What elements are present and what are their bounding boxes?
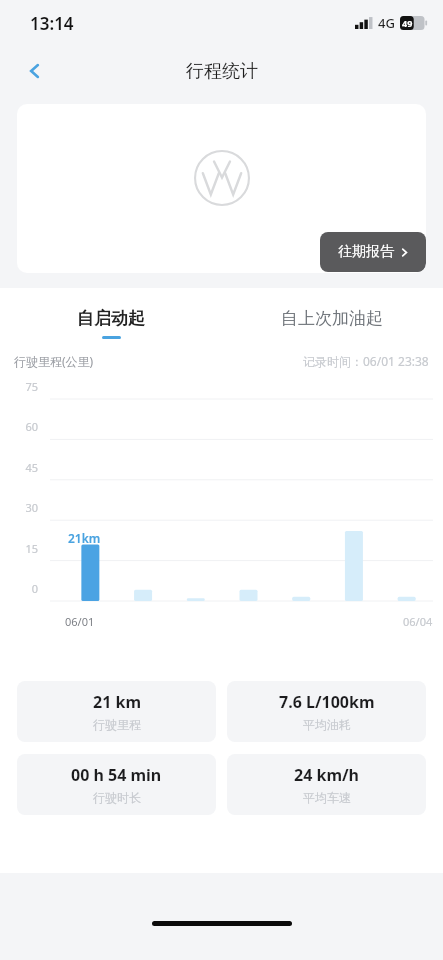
button[interactable]: 自启动起 [0,308,221,339]
staticText: 自上次加油起 [281,308,383,329]
staticText: 49 [402,17,413,29]
staticText: 行驶里程 [93,717,141,732]
button[interactable]: 00 h 54 min [17,754,216,815]
staticText: 13:14 [30,12,74,35]
staticText: 00 h 54 min [71,764,162,786]
button[interactable]: Back [14,50,56,92]
staticText: 45 [0,460,38,475]
staticText: 15 [0,541,38,556]
staticText: 21 km [93,691,141,713]
staticText: 06/01 [65,614,95,629]
button[interactable]: 自上次加油起 [221,308,443,339]
staticText: 行驶里程(公里) [14,353,94,369]
staticText: 平均车速 [303,790,351,805]
button[interactable]: 24 km/h [227,754,426,815]
staticText: 24 km/h [294,764,360,786]
staticText: 平均油耗 [303,717,351,732]
staticText: 21km [68,530,101,546]
staticText: 4G [378,14,395,32]
staticText: 75 [0,379,38,394]
button[interactable]: 往期报告 [320,232,426,272]
button[interactable]: 21 km [17,681,216,742]
staticText: 06/04 [403,614,433,629]
staticText: 自启动起 [77,308,145,329]
staticText: 行程统计 [186,60,258,83]
staticText: 60 [0,419,38,434]
staticText: 0 [0,581,38,596]
staticText: 行驶时长 [93,790,141,805]
staticText: 7.6 L/100km [279,691,375,713]
staticText: 往期报告 [338,243,394,261]
staticText: 记录时间：06/01 23:38 [303,353,429,369]
staticText: 30 [0,500,38,515]
button[interactable]: 7.6 L/100km [227,681,426,742]
